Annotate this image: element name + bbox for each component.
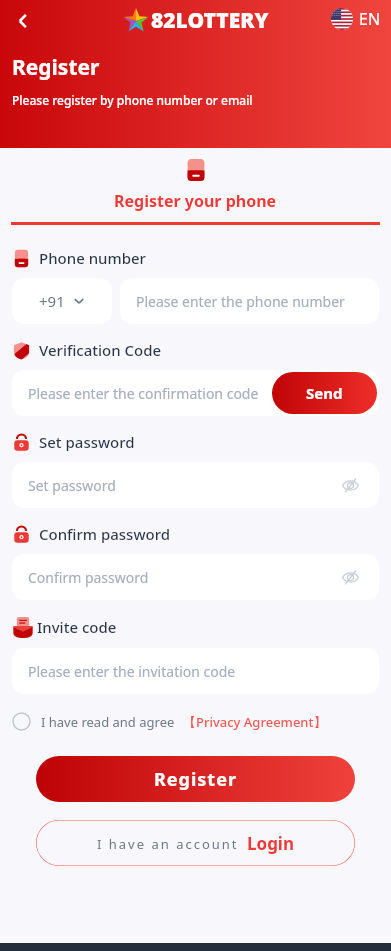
staticText: Phone number	[39, 248, 146, 268]
button[interactable]: I have read and agree	[12, 712, 327, 731]
staticText: Set password	[39, 432, 135, 452]
staticText: Register your phone	[114, 190, 277, 212]
staticText: +91	[39, 291, 65, 311]
staticText: Please enter the phone number	[136, 292, 345, 311]
staticText: Confirm password	[28, 568, 149, 587]
staticText: Verification Code	[39, 340, 162, 360]
button[interactable]: +91	[12, 278, 112, 324]
staticText: I have read and agree	[41, 713, 175, 731]
button[interactable]: I have an account	[36, 820, 355, 866]
button[interactable]: Set password	[12, 462, 379, 508]
staticText: Please register by phone number or email	[12, 92, 253, 108]
staticText: 82LOTTERY	[151, 6, 269, 35]
button[interactable]: Show password	[337, 564, 363, 590]
button[interactable]: Please enter the invitation code	[12, 648, 379, 694]
button[interactable]: Show password	[337, 472, 363, 498]
button[interactable]: Please enter the phone number	[120, 278, 379, 324]
staticText: EN	[359, 8, 381, 30]
staticText: I have an account	[97, 835, 239, 853]
staticText: Register	[154, 767, 237, 792]
staticText: Please enter the invitation code	[28, 662, 236, 681]
staticText: Invite code	[37, 617, 117, 637]
staticText: Please enter the confirmation code	[28, 384, 259, 403]
button[interactable]: Back	[6, 4, 40, 38]
staticText: Set password	[28, 476, 116, 495]
button[interactable]: Register your phone	[114, 158, 277, 212]
staticText: Send	[306, 383, 343, 403]
staticText: Register	[12, 53, 100, 82]
button[interactable]: EN	[331, 8, 381, 30]
staticText: 【Privacy Agreement】	[183, 713, 327, 731]
button[interactable]: Send	[272, 372, 377, 414]
button[interactable]: Confirm password	[12, 554, 379, 600]
staticText: Login	[247, 832, 295, 855]
button[interactable]: Register	[36, 756, 355, 802]
staticText: Confirm password	[39, 524, 171, 544]
